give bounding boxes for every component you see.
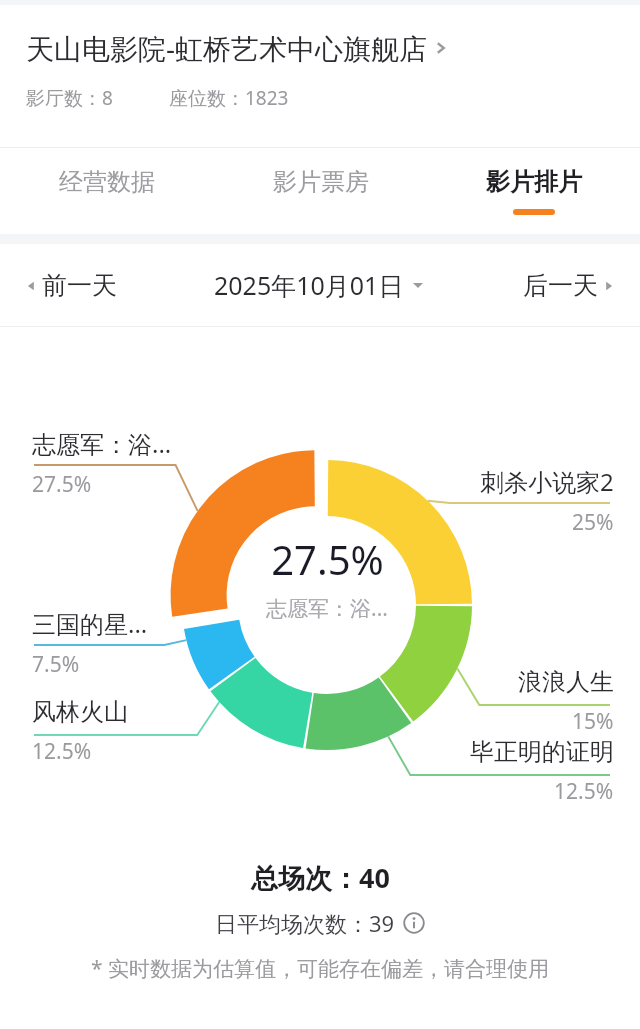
staticText: 影片票房 bbox=[273, 167, 369, 197]
staticText: 日平均场次数：39 bbox=[215, 908, 395, 938]
staticText: 15% bbox=[572, 707, 614, 736]
staticText: 座位数：1823 bbox=[169, 85, 289, 111]
staticText: 浪浪人生 bbox=[518, 667, 614, 697]
button[interactable]: About average daily shows bbox=[403, 912, 425, 934]
staticText: 总场次：40 bbox=[251, 859, 390, 896]
staticText: 2025年10月01日 bbox=[214, 268, 404, 302]
button[interactable]: 后一天 bbox=[515, 260, 624, 311]
button[interactable]: 天山电影院-虹桥艺术中心旗舰店 bbox=[0, 5, 640, 147]
staticText: 27.5% bbox=[32, 470, 92, 499]
button[interactable]: 影片排片 bbox=[427, 148, 640, 234]
staticText: 12.5% bbox=[554, 777, 614, 806]
staticText: 25% bbox=[572, 508, 614, 537]
staticText: 7.5% bbox=[32, 650, 80, 679]
staticText: 前一天 bbox=[42, 270, 117, 301]
staticText: 志愿军：浴... bbox=[32, 427, 172, 460]
staticText: 志愿军：浴... bbox=[266, 594, 388, 623]
staticText: 天山电影院-虹桥艺术中心旗舰店 bbox=[26, 29, 428, 67]
staticText: 27.5% bbox=[271, 532, 384, 586]
staticText: 影厅数：8 bbox=[26, 85, 113, 111]
button[interactable]: 影片票房 bbox=[214, 148, 427, 234]
button[interactable]: 前一天 bbox=[16, 260, 125, 311]
staticText: 后一天 bbox=[523, 270, 598, 301]
staticText: 12.5% bbox=[32, 737, 92, 766]
staticText: 三国的星... bbox=[32, 607, 148, 640]
button[interactable]: 经营数据 bbox=[0, 148, 214, 234]
staticText: * 实时数据为估算值，可能存在偏差，请合理使用 bbox=[91, 954, 550, 983]
staticText: 刺杀小说家2 bbox=[480, 465, 614, 498]
staticText: 影片排片 bbox=[486, 167, 582, 197]
button[interactable]: 2025年10月01日 bbox=[206, 258, 433, 312]
staticText: 风林火山 bbox=[32, 697, 128, 727]
staticText: 毕正明的证明 bbox=[470, 737, 614, 767]
staticText: 经营数据 bbox=[59, 167, 155, 197]
